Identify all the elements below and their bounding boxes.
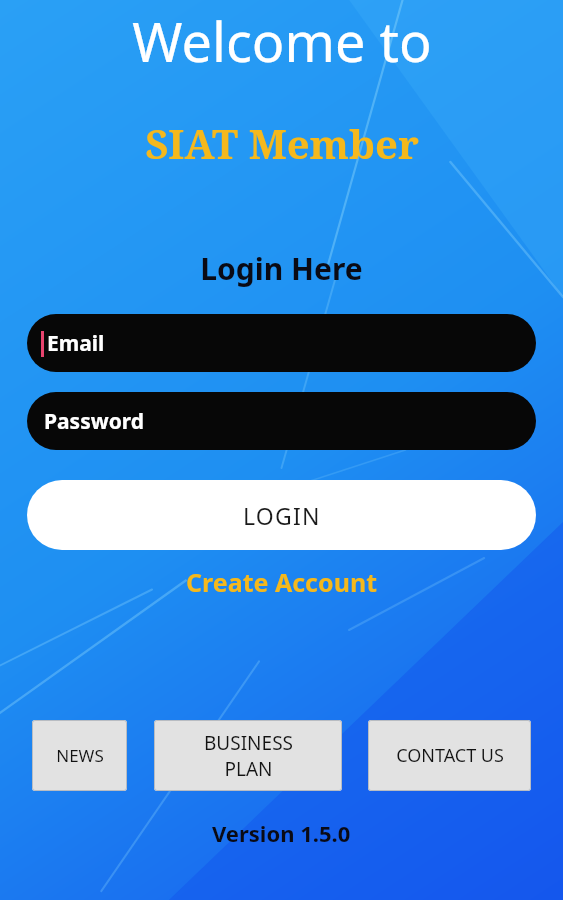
staticText: Password (44, 407, 145, 436)
staticText: NEWS (56, 744, 104, 767)
staticText: SIAT Member (145, 116, 419, 170)
staticText: Welcome to (132, 4, 432, 78)
staticText: Create Account (186, 565, 377, 599)
staticText: LOGIN (243, 500, 321, 531)
button[interactable]: Password (27, 392, 536, 450)
staticText: BUSINESS PLAN (204, 730, 293, 782)
staticText: CONTACT US (396, 743, 504, 768)
button[interactable]: LOGIN (27, 480, 536, 550)
staticText: Login Here (200, 248, 363, 289)
button[interactable]: NEWS (32, 720, 127, 791)
button[interactable]: BUSINESS PLAN (154, 720, 342, 791)
staticText: Version 1.5.0 (212, 818, 351, 848)
button[interactable]: Email (27, 314, 536, 372)
button[interactable]: Create Account (176, 561, 387, 603)
button[interactable]: CONTACT US (368, 720, 531, 791)
staticText: Email (47, 329, 105, 358)
